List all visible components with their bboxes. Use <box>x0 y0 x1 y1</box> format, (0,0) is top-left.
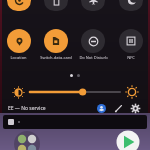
button[interactable] <box>3 115 147 129</box>
button[interactable]: Settings <box>128 103 142 113</box>
staticText: Do Not Disturb <box>79 55 108 60</box>
button[interactable]: Switch-data-card <box>37 29 74 67</box>
button[interactable]: Battery Saver <box>37 0 74 21</box>
button[interactable]: Do Not Disturb <box>74 29 112 67</box>
staticText: NFC <box>127 55 135 60</box>
button[interactable]: Aeroplane mode <box>74 0 112 21</box>
button[interactable]: Raise brightness <box>124 84 140 100</box>
button[interactable]: Lower brightness <box>10 84 26 100</box>
button[interactable]: NFC <box>112 29 150 67</box>
staticText: EE — No service <box>8 105 46 112</box>
button[interactable]: Flight mode <box>112 0 150 21</box>
button[interactable]: Edit tiles <box>111 103 125 113</box>
button[interactable]: Auto-rotate <box>0 0 37 21</box>
button[interactable]: EE — No service <box>8 105 94 112</box>
staticText: Switch-data-card <box>40 55 72 60</box>
button[interactable]: User account <box>94 103 108 113</box>
button[interactable]: Location <box>0 29 37 67</box>
button[interactable] <box>30 85 120 99</box>
staticText: Location <box>10 55 27 60</box>
